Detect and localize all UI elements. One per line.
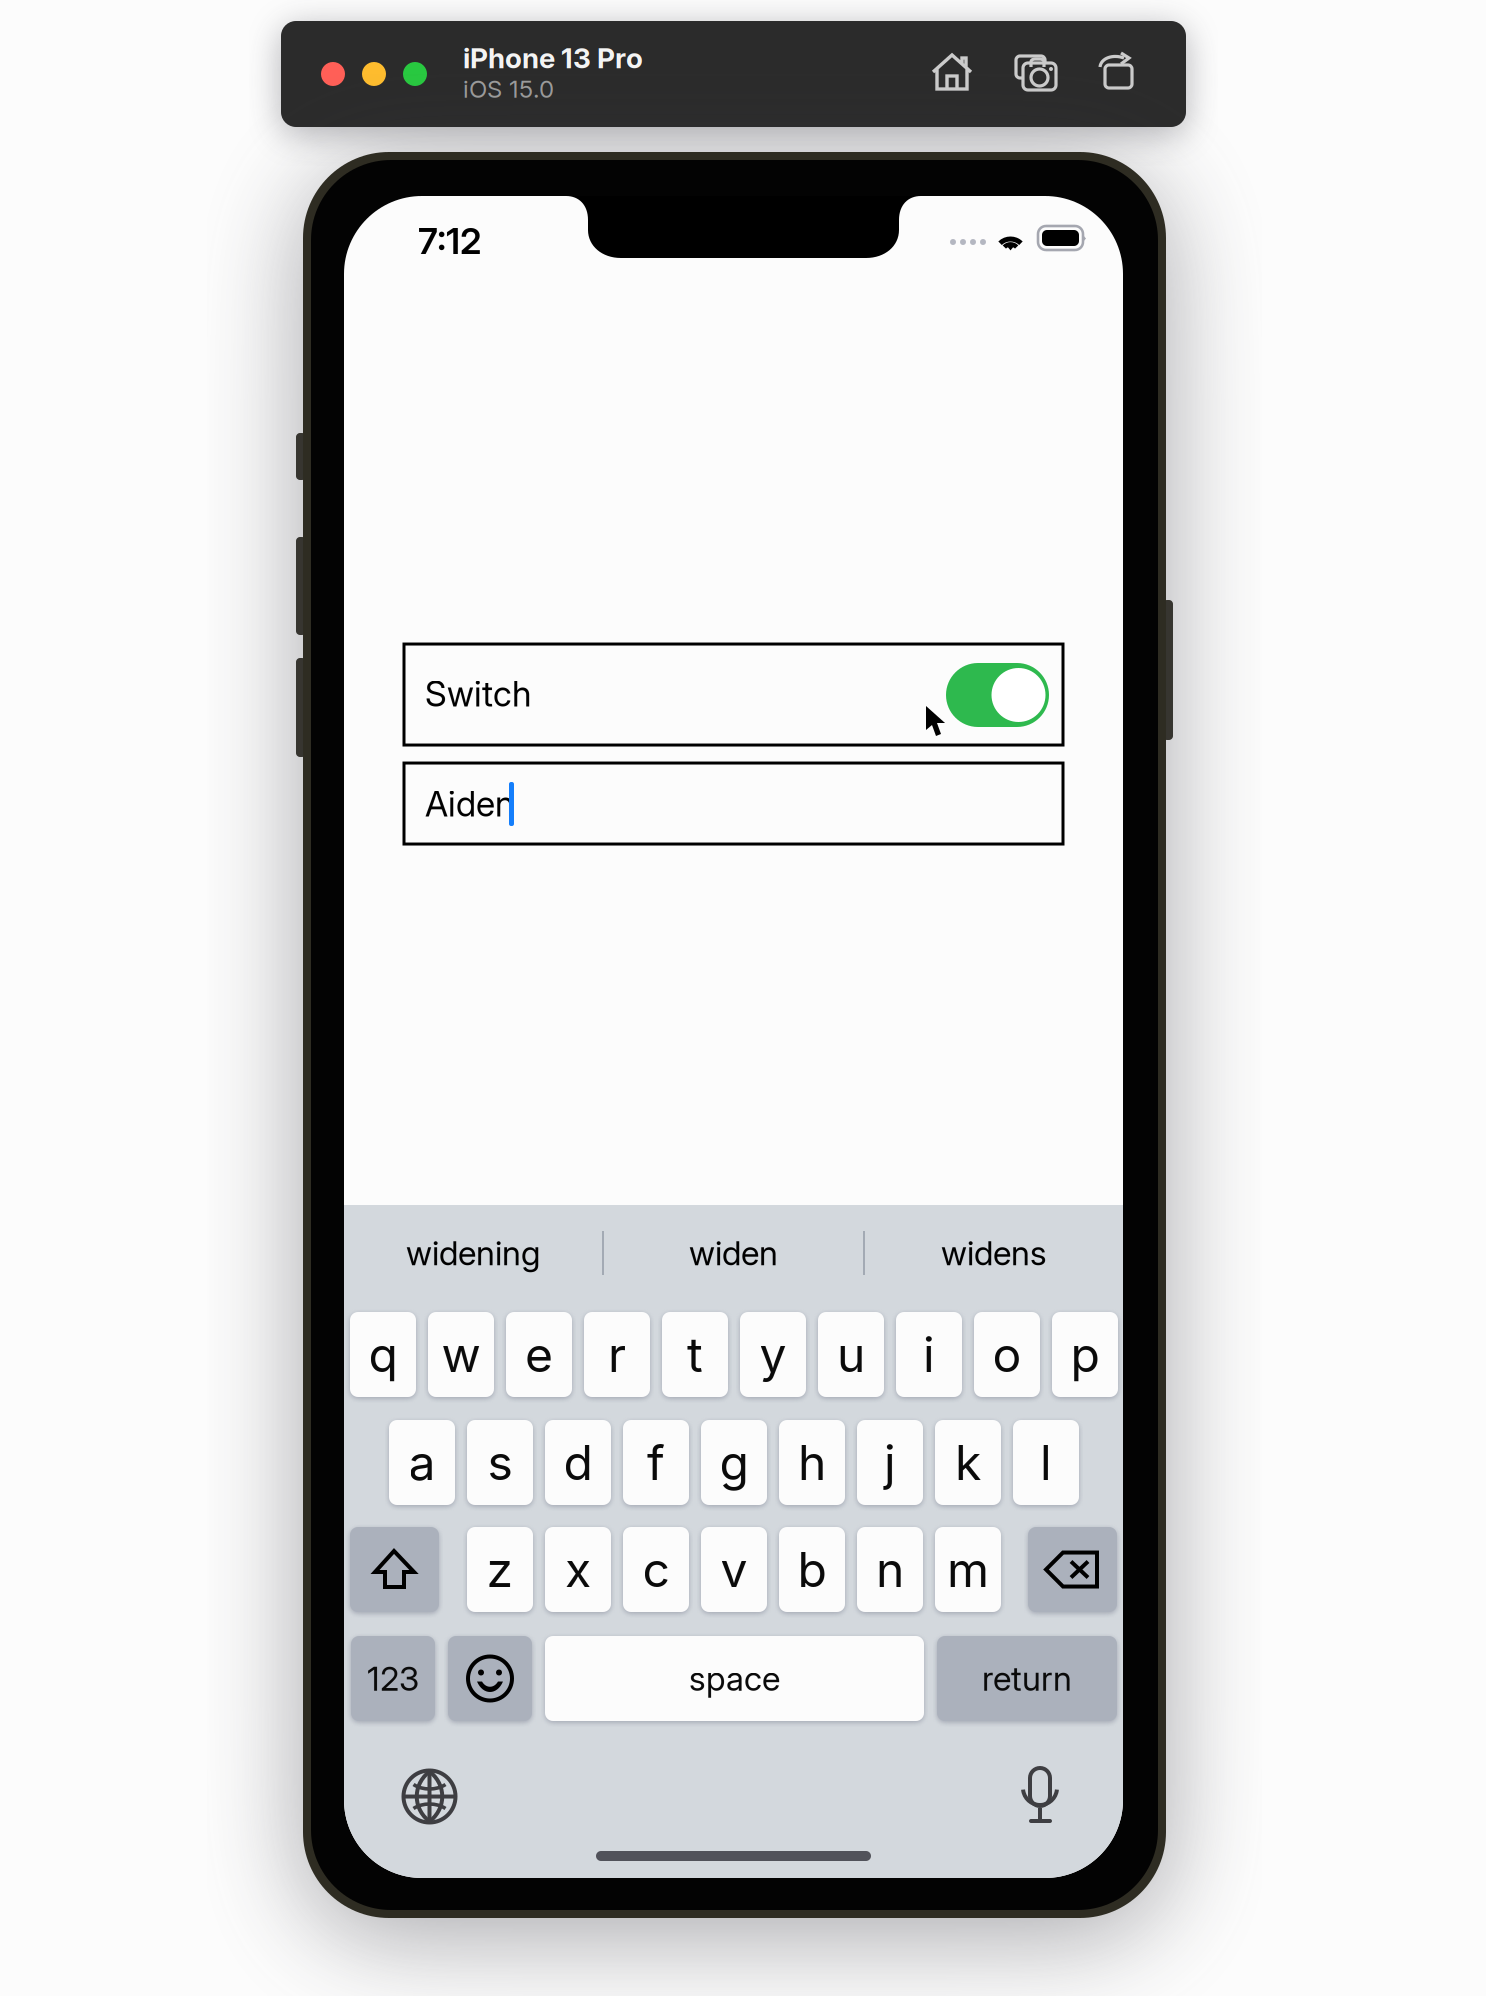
button[interactable]: x	[545, 1527, 611, 1612]
button[interactable]: z	[467, 1527, 533, 1612]
staticText: t	[687, 1325, 703, 1384]
staticText: a	[408, 1433, 435, 1492]
staticText: 7:12	[418, 219, 481, 263]
button[interactable]: t	[662, 1312, 728, 1397]
button[interactable]: s	[467, 1420, 533, 1505]
staticText: q	[368, 1325, 397, 1384]
button[interactable]: Shift	[350, 1527, 439, 1612]
staticText: x	[565, 1540, 591, 1599]
staticText: iPhone 13 Pro	[463, 41, 643, 75]
button[interactable]: Switch keyboard	[403, 1770, 456, 1823]
staticText: s	[487, 1433, 512, 1492]
staticText: u	[837, 1325, 865, 1384]
button[interactable]: Home	[932, 54, 972, 90]
staticText: f	[647, 1433, 665, 1492]
button[interactable]: v	[701, 1527, 767, 1612]
staticText: p	[1070, 1325, 1099, 1384]
button[interactable]: i	[896, 1312, 962, 1397]
button[interactable]: j	[857, 1420, 923, 1505]
button[interactable]: Emoji	[448, 1636, 532, 1721]
button[interactable]: w	[428, 1312, 494, 1397]
staticText: space	[689, 1658, 780, 1699]
button[interactable]: h	[779, 1420, 845, 1505]
button[interactable]: o	[974, 1312, 1040, 1397]
button[interactable]: g	[701, 1420, 767, 1505]
staticText: n	[876, 1540, 904, 1599]
staticText: y	[759, 1325, 786, 1384]
staticText: h	[798, 1433, 826, 1492]
button[interactable]: return	[937, 1636, 1117, 1721]
button[interactable]: e	[506, 1312, 572, 1397]
button[interactable]: p	[1052, 1312, 1118, 1397]
staticText: k	[955, 1433, 981, 1492]
staticText: w	[441, 1325, 480, 1384]
staticText: d	[563, 1433, 592, 1492]
button[interactable]: 123	[351, 1636, 435, 1721]
staticText: i	[923, 1325, 935, 1384]
button[interactable]: widening	[344, 1205, 602, 1301]
staticText: l	[1040, 1433, 1052, 1492]
staticText: r	[608, 1325, 626, 1384]
staticText: widens	[941, 1233, 1047, 1273]
button[interactable]: Dictation	[1021, 1768, 1059, 1826]
staticText: v	[720, 1540, 747, 1599]
staticText: g	[719, 1433, 748, 1492]
staticText: m	[947, 1540, 989, 1599]
button[interactable]: r	[584, 1312, 650, 1397]
button[interactable]: y	[740, 1312, 806, 1397]
button[interactable]: k	[935, 1420, 1001, 1505]
button[interactable]: widens	[865, 1205, 1123, 1301]
button[interactable]: l	[1013, 1420, 1079, 1505]
staticText: j	[884, 1433, 896, 1492]
staticText: 123	[367, 1658, 419, 1699]
staticText: c	[642, 1540, 669, 1599]
button[interactable]: u	[818, 1312, 884, 1397]
button[interactable]: q	[350, 1312, 416, 1397]
staticText: Aiden	[425, 783, 514, 825]
button[interactable]: Screenshot	[1016, 54, 1056, 90]
button[interactable]: f	[623, 1420, 689, 1505]
button[interactable]: c	[623, 1527, 689, 1612]
staticText: e	[525, 1325, 553, 1384]
button[interactable]: m	[935, 1527, 1001, 1612]
button[interactable]: widen	[604, 1205, 863, 1301]
staticText: Switch	[425, 673, 531, 715]
button[interactable]: d	[545, 1420, 611, 1505]
staticText: b	[797, 1540, 826, 1599]
staticText: iOS 15.0	[463, 74, 554, 103]
button[interactable]: Rotate	[1096, 52, 1136, 88]
staticText: o	[992, 1325, 1021, 1384]
button[interactable]: b	[779, 1527, 845, 1612]
button[interactable]: space	[545, 1636, 924, 1721]
staticText: return	[982, 1658, 1072, 1699]
staticText: widening	[406, 1233, 540, 1273]
staticText: widen	[689, 1233, 778, 1273]
button[interactable]: Delete	[1028, 1527, 1117, 1612]
button[interactable]: n	[857, 1527, 923, 1612]
staticText: z	[486, 1540, 513, 1599]
button[interactable]: a	[389, 1420, 455, 1505]
